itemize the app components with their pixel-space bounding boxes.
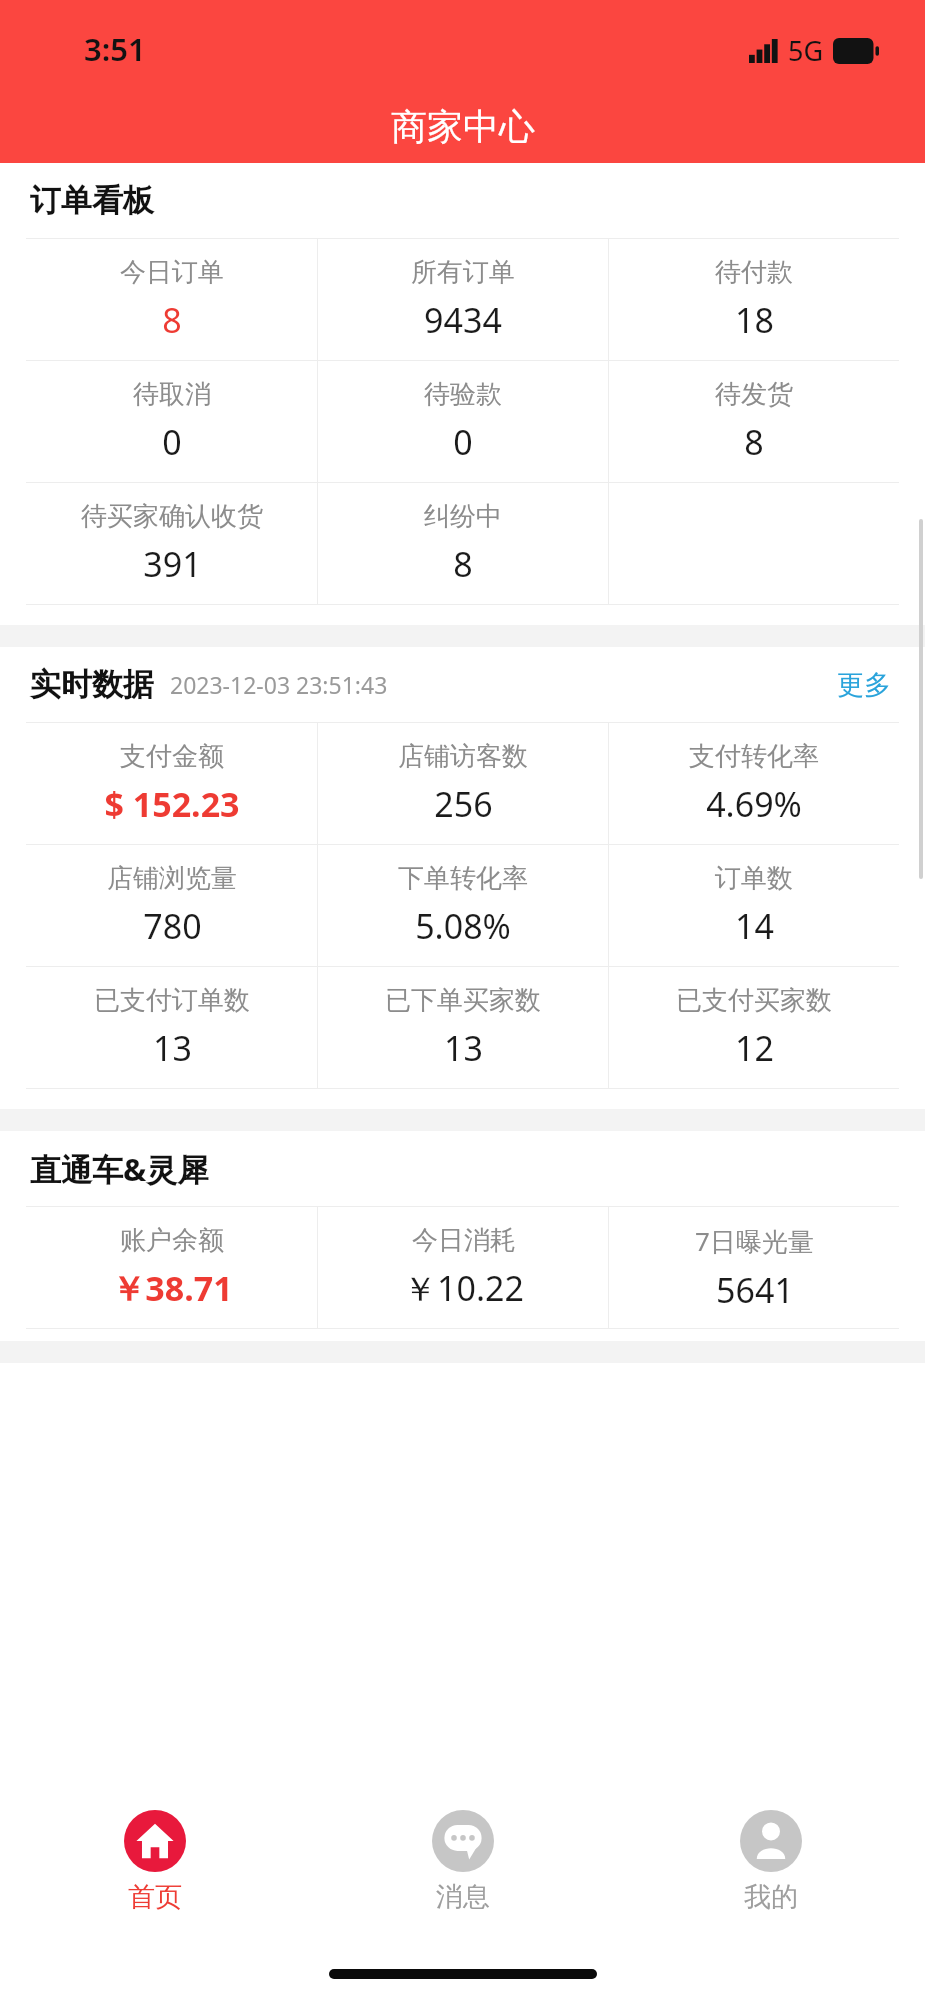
staticText: 今日订单 [120, 256, 224, 289]
staticText: 4.69% [706, 781, 802, 827]
button[interactable]: 已下单买家数 [318, 967, 608, 1088]
staticText: 391 [143, 541, 202, 587]
button[interactable]: 待发货 [609, 361, 899, 482]
button[interactable]: 支付转化率 [609, 723, 899, 844]
staticText: 13 [153, 1025, 192, 1071]
button[interactable]: 下单转化率 [318, 845, 608, 966]
button[interactable]: 待买家确认收货 [26, 483, 317, 604]
staticText: 店铺浏览量 [107, 862, 237, 895]
button[interactable]: 待付款 [609, 239, 899, 360]
button[interactable]: 账户余额 [26, 1207, 317, 1328]
button[interactable]: 店铺浏览量 [26, 845, 317, 966]
staticText: 已支付订单数 [94, 984, 250, 1017]
staticText: 14 [735, 903, 774, 949]
button[interactable]: 今日订单 [26, 239, 317, 360]
button[interactable]: 店铺访客数 [318, 723, 608, 844]
button[interactable]: 消息 [309, 1788, 617, 1948]
staticText: 更多 [837, 668, 891, 702]
staticText: 5G [788, 32, 824, 69]
button[interactable]: 所有订单 [318, 239, 608, 360]
button[interactable]: 已支付买家数 [609, 967, 899, 1088]
button[interactable]: 今日消耗 [318, 1207, 608, 1328]
staticText: 消息 [436, 1880, 490, 1914]
staticText: 18 [735, 297, 774, 343]
staticText: 商家中心 [391, 104, 535, 149]
staticText: 待验款 [424, 378, 502, 411]
staticText: 支付金额 [120, 740, 224, 773]
staticText: 13 [444, 1025, 483, 1071]
button[interactable]: 待验款 [318, 361, 608, 482]
staticText: 9434 [424, 297, 502, 343]
staticText: 3:51 [84, 28, 146, 70]
staticText: 0 [162, 419, 182, 465]
staticText: 今日消耗 [412, 1224, 516, 1257]
staticText: 店铺访客数 [398, 740, 528, 773]
staticText: 5641 [716, 1267, 794, 1313]
staticText: 8 [744, 419, 764, 465]
staticText: 账户余额 [120, 1224, 224, 1257]
button[interactable]: 待取消 [26, 361, 317, 482]
button[interactable]: 首页 [0, 1788, 309, 1948]
button[interactable]: 订单数 [609, 845, 899, 966]
staticText: 12 [735, 1025, 774, 1071]
button[interactable]: 纠纷中 [318, 483, 608, 604]
staticText: 所有订单 [411, 256, 515, 289]
staticText: 我的 [744, 1880, 798, 1914]
staticText: ￥10.22 [403, 1265, 524, 1311]
staticText: 待付款 [715, 256, 793, 289]
staticText: 订单看板 [30, 181, 154, 220]
staticText: 780 [143, 903, 202, 949]
staticText: 已下单买家数 [385, 984, 541, 1017]
staticText: 实时数据 [30, 665, 154, 704]
staticText: $ 152.23 [104, 781, 240, 827]
button[interactable]: 支付金额 [26, 723, 317, 844]
staticText: 下单转化率 [398, 862, 528, 895]
button[interactable]: 已支付订单数 [26, 967, 317, 1088]
staticText: 待取消 [133, 378, 211, 411]
staticText: 订单数 [715, 862, 793, 895]
staticText: 5.08% [415, 903, 511, 949]
staticText: 待发货 [715, 378, 793, 411]
staticText: 7日曝光量 [695, 1223, 814, 1259]
staticText: 首页 [128, 1880, 182, 1914]
staticText: 支付转化率 [689, 740, 819, 773]
button[interactable]: 我的 [617, 1788, 925, 1948]
button[interactable]: 更多 [833, 662, 895, 708]
staticText: 0 [453, 419, 473, 465]
staticText: 纠纷中 [424, 500, 502, 533]
staticText: 8 [162, 297, 182, 343]
staticText: 待买家确认收货 [81, 500, 263, 533]
button[interactable]: 7日曝光量 [609, 1207, 899, 1328]
staticText: 已支付买家数 [676, 984, 832, 1017]
staticText: 直通车&灵犀 [30, 1148, 209, 1190]
staticText: 256 [434, 781, 493, 827]
staticText: 8 [453, 541, 473, 587]
staticText: ￥38.71 [111, 1265, 233, 1311]
staticText: 2023-12-03 23:51:43 [170, 669, 388, 700]
